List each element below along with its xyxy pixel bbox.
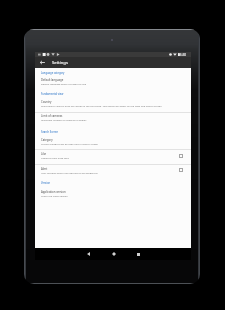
staticText: Limit of cameras — [41, 114, 63, 118]
button[interactable]: Recent apps — [126, 248, 151, 260]
staticText: Check the latest version — [41, 194, 68, 197]
staticText: Chosen category will be seen only in Sea… — [41, 142, 99, 145]
staticText: Cameras must have likes — [41, 156, 69, 159]
staticText: Settings — [52, 60, 68, 66]
staticText: Default language which you want to use — [41, 82, 87, 85]
staticText: 16:30 — [178, 53, 187, 57]
staticText: Category — [41, 138, 53, 142]
staticText: Alert — [41, 167, 48, 171]
staticText: Country — [41, 100, 52, 104]
staticText: Maximum number of cameras to display — [41, 118, 87, 121]
button[interactable]: Back — [76, 248, 101, 260]
button[interactable] — [35, 98, 191, 109]
staticText: Application version — [41, 190, 66, 194]
staticText: Alert cameras which are reported to be d… — [41, 171, 98, 174]
staticText: Language category — [41, 71, 65, 74]
button[interactable] — [35, 165, 191, 176]
button[interactable] — [35, 76, 191, 87]
button[interactable]: Navigate up — [35, 57, 49, 68]
button[interactable] — [35, 150, 191, 161]
staticText: Version — [41, 181, 51, 184]
staticText: Default language — [41, 78, 64, 82]
staticText: Fundamental view — [41, 92, 64, 95]
button[interactable]: Home — [101, 248, 126, 260]
button[interactable] — [35, 136, 191, 147]
button[interactable] — [35, 188, 191, 199]
staticText: Search Screen — [41, 130, 59, 133]
button[interactable] — [35, 112, 191, 123]
staticText: Like — [41, 152, 47, 156]
staticText: Select which country must be chosen in t… — [41, 104, 162, 107]
